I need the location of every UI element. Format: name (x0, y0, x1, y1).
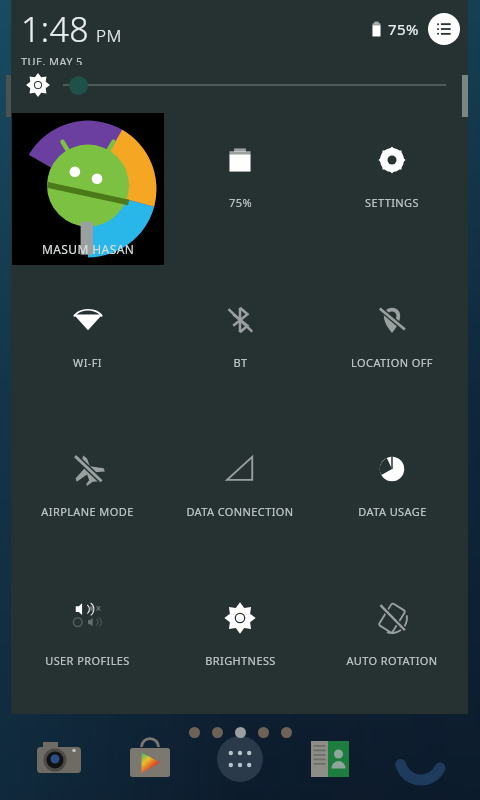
staticText: 75% (388, 19, 419, 39)
button[interactable]: Play Store (119, 728, 181, 790)
button[interactable]: SETTINGS (316, 105, 468, 265)
button[interactable]: AUTO ROTATION (316, 563, 468, 712)
staticText: AUTO ROTATION (346, 653, 438, 668)
button[interactable]: Quick settings list (428, 13, 460, 45)
button[interactable]: DATA USAGE (316, 414, 468, 563)
staticText: AIRPLANE MODE (41, 504, 134, 519)
staticText: 75% (229, 195, 252, 210)
button[interactable] (11, 65, 468, 105)
staticText: 1:48 (21, 6, 90, 52)
staticText: BRIGHTNESS (205, 653, 276, 668)
button[interactable]: Camera (28, 728, 90, 790)
staticText: SETTINGS (365, 195, 419, 210)
button[interactable]: Contacts (299, 728, 361, 790)
staticText: LOCATION OFF (351, 355, 433, 370)
button[interactable]: BT (164, 265, 316, 414)
button[interactable]: WI-FI (11, 265, 164, 414)
button[interactable]: LOCATION OFF (316, 265, 468, 414)
button[interactable]: USER PROFILES (11, 563, 164, 712)
staticText: WI-FI (73, 355, 102, 370)
staticText: TUE, MAY 5 (21, 54, 83, 65)
button[interactable]: All apps (209, 728, 271, 790)
staticText: PM (96, 24, 122, 47)
staticText: DATA USAGE (358, 504, 427, 519)
staticText: MASUM HASAN (42, 241, 135, 257)
button[interactable]: AIRPLANE MODE (11, 414, 164, 563)
button[interactable]: 75% (164, 105, 316, 265)
button[interactable]: MASUM HASAN (12, 113, 164, 265)
staticText: BT (233, 355, 248, 370)
staticText: USER PROFILES (45, 653, 130, 668)
button[interactable]: BRIGHTNESS (164, 563, 316, 712)
staticText: DATA CONNECTION (186, 504, 294, 519)
button[interactable]: DATA CONNECTION (164, 414, 316, 563)
button[interactable]: Phone (390, 728, 452, 790)
